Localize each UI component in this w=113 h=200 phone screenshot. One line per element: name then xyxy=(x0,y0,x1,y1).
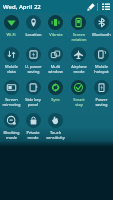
staticText: Blocking mode xyxy=(3,130,20,140)
staticText: Mobile hotspot xyxy=(94,64,109,74)
button[interactable]: Screen rotation xyxy=(67,15,90,48)
button[interactable]: Smart stay xyxy=(67,80,90,113)
button[interactable]: Touch sensitivity xyxy=(44,113,67,146)
staticText: Sync xyxy=(51,97,60,102)
button[interactable]: Edit quick settings xyxy=(84,0,97,13)
button[interactable]: Blocking mode xyxy=(0,113,22,146)
button[interactable]: Location xyxy=(22,15,44,48)
staticText: Airplane mode xyxy=(71,64,87,74)
staticText: Screen rotation xyxy=(71,32,87,42)
staticText: Screen mirroring xyxy=(2,97,21,107)
staticText: Wi-Fi xyxy=(6,32,16,37)
staticText: Location xyxy=(25,32,42,37)
staticText: Side key panel xyxy=(25,97,41,107)
staticText: Power saving xyxy=(95,97,108,107)
staticText: Touch sensitivity xyxy=(46,130,65,140)
button[interactable]: Wi-Fi xyxy=(0,15,22,48)
button[interactable]: Mobile hotspot xyxy=(90,47,113,80)
staticText: Wed, April 22 xyxy=(3,3,41,11)
staticText: Private mode xyxy=(26,130,40,140)
staticText: Smart stay xyxy=(73,97,85,107)
button[interactable]: Screen mirroring xyxy=(0,80,22,113)
button[interactable]: Multi window xyxy=(44,47,67,80)
button[interactable]: Show all quick settings xyxy=(98,0,113,13)
button[interactable]: Power saving xyxy=(90,80,113,113)
button[interactable]: Bluetooth xyxy=(90,15,113,48)
button[interactable]: Mobile data xyxy=(0,47,22,80)
button[interactable]: Vibrate xyxy=(44,15,67,48)
button[interactable]: Sync xyxy=(44,80,67,113)
button[interactable]: Side key panel xyxy=(22,80,44,113)
button[interactable]: U. power saving xyxy=(22,47,44,80)
staticText: Bluetooth xyxy=(92,32,111,37)
staticText: U. power saving xyxy=(25,64,42,74)
button[interactable]: Private mode xyxy=(22,113,44,146)
staticText: Vibrate xyxy=(49,32,63,37)
staticText: Mobile data xyxy=(5,64,18,74)
staticText: Multi window xyxy=(48,64,63,74)
button[interactable]: Airplane mode xyxy=(67,47,90,80)
